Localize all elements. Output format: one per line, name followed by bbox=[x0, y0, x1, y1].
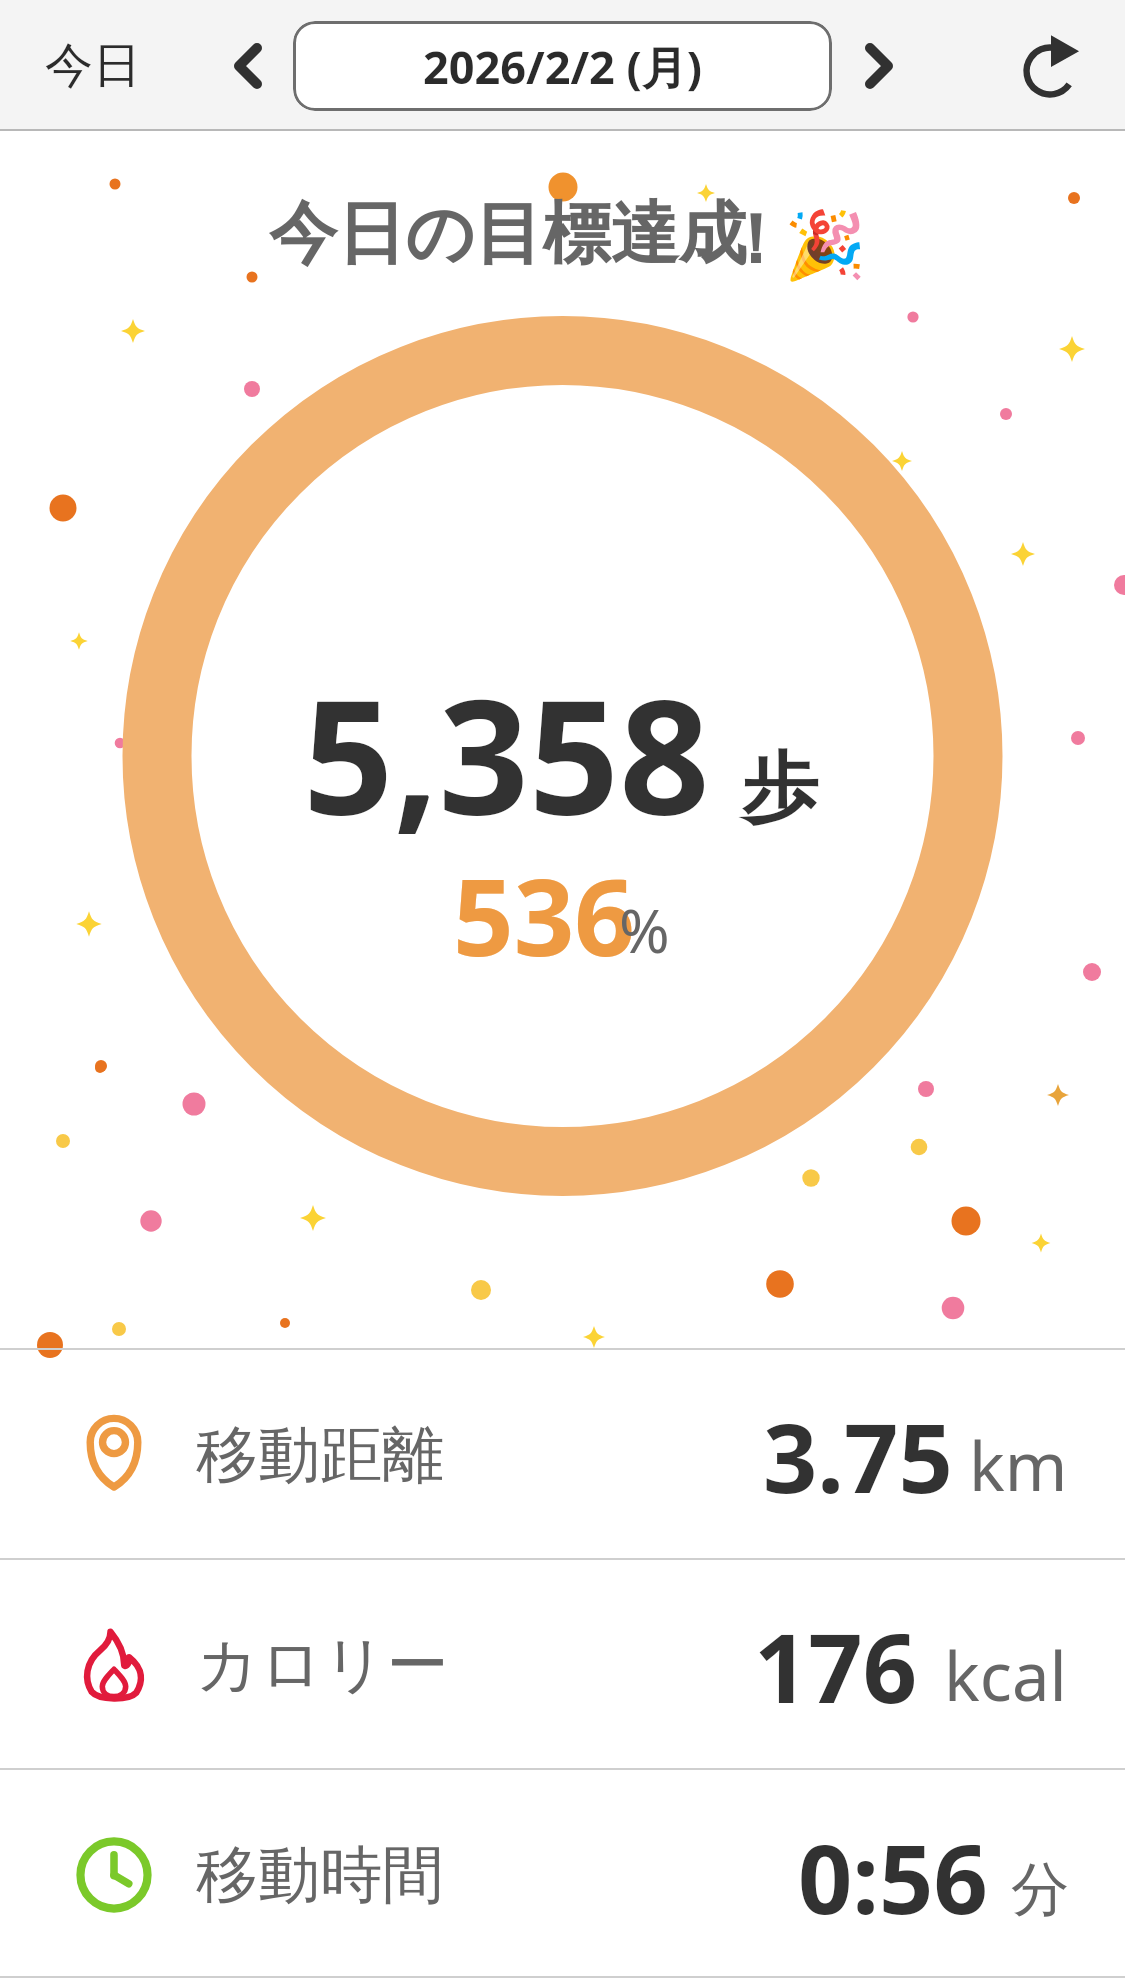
button[interactable]: Refresh bbox=[990, 0, 1110, 131]
staticText: 🎉 bbox=[784, 207, 867, 284]
staticText: 歩 bbox=[742, 741, 818, 837]
staticText: 移動距離 bbox=[196, 1416, 444, 1494]
staticText: 3.75 bbox=[763, 1391, 953, 1520]
button[interactable]: 2026/2/2 (月) bbox=[293, 21, 832, 111]
button[interactable]: カロリー bbox=[0, 1560, 1125, 1769]
staticText: kcal bbox=[944, 1629, 1067, 1720]
button[interactable]: Previous day bbox=[195, 0, 300, 131]
staticText: 移動時間 bbox=[196, 1836, 444, 1914]
staticText: ！ bbox=[721, 198, 789, 284]
staticText: 5,358 bbox=[303, 645, 710, 860]
staticText: 今日 bbox=[45, 36, 141, 96]
button[interactable]: Next day bbox=[826, 0, 931, 131]
button[interactable]: 移動距離 bbox=[0, 1350, 1125, 1559]
staticText: 176 bbox=[754, 1601, 918, 1730]
staticText: % bbox=[619, 888, 670, 971]
button[interactable]: 移動時間 bbox=[0, 1770, 1125, 1980]
staticText: km bbox=[969, 1419, 1068, 1510]
staticText: 分 bbox=[1011, 1853, 1069, 1926]
button[interactable]: 今日 bbox=[20, 0, 165, 131]
staticText: 0:56 bbox=[798, 1812, 988, 1941]
staticText: 今日の目標達成 bbox=[269, 192, 747, 278]
staticText: 536 bbox=[453, 843, 635, 987]
staticText: カロリー bbox=[196, 1626, 449, 1704]
staticText: 2026/2/2 (月) bbox=[423, 36, 703, 97]
